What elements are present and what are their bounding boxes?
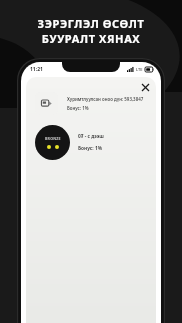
button[interactable]: Close — [138, 80, 152, 94]
staticText: BRONZE — [45, 136, 61, 141]
staticText: Бонус: 1% — [67, 105, 89, 111]
button[interactable]: Хуримтлуулсан оноо дүн: 593,3847 — [35, 92, 150, 115]
staticText: Бонус: 1% — [78, 145, 103, 152]
button[interactable]: BRONZE — [35, 125, 150, 160]
staticText: Хуримтлуулсан оноо дүн: 593,3847 — [67, 96, 144, 102]
staticText: LTE — [136, 67, 143, 72]
staticText: ЗЭРЭГЛЭЛ ӨСӨЛТ БУУРАЛТ ХЯНАХ — [10, 16, 172, 46]
staticText: 11:21 — [30, 66, 43, 73]
staticText: 0₮ - с дээш — [78, 133, 104, 140]
